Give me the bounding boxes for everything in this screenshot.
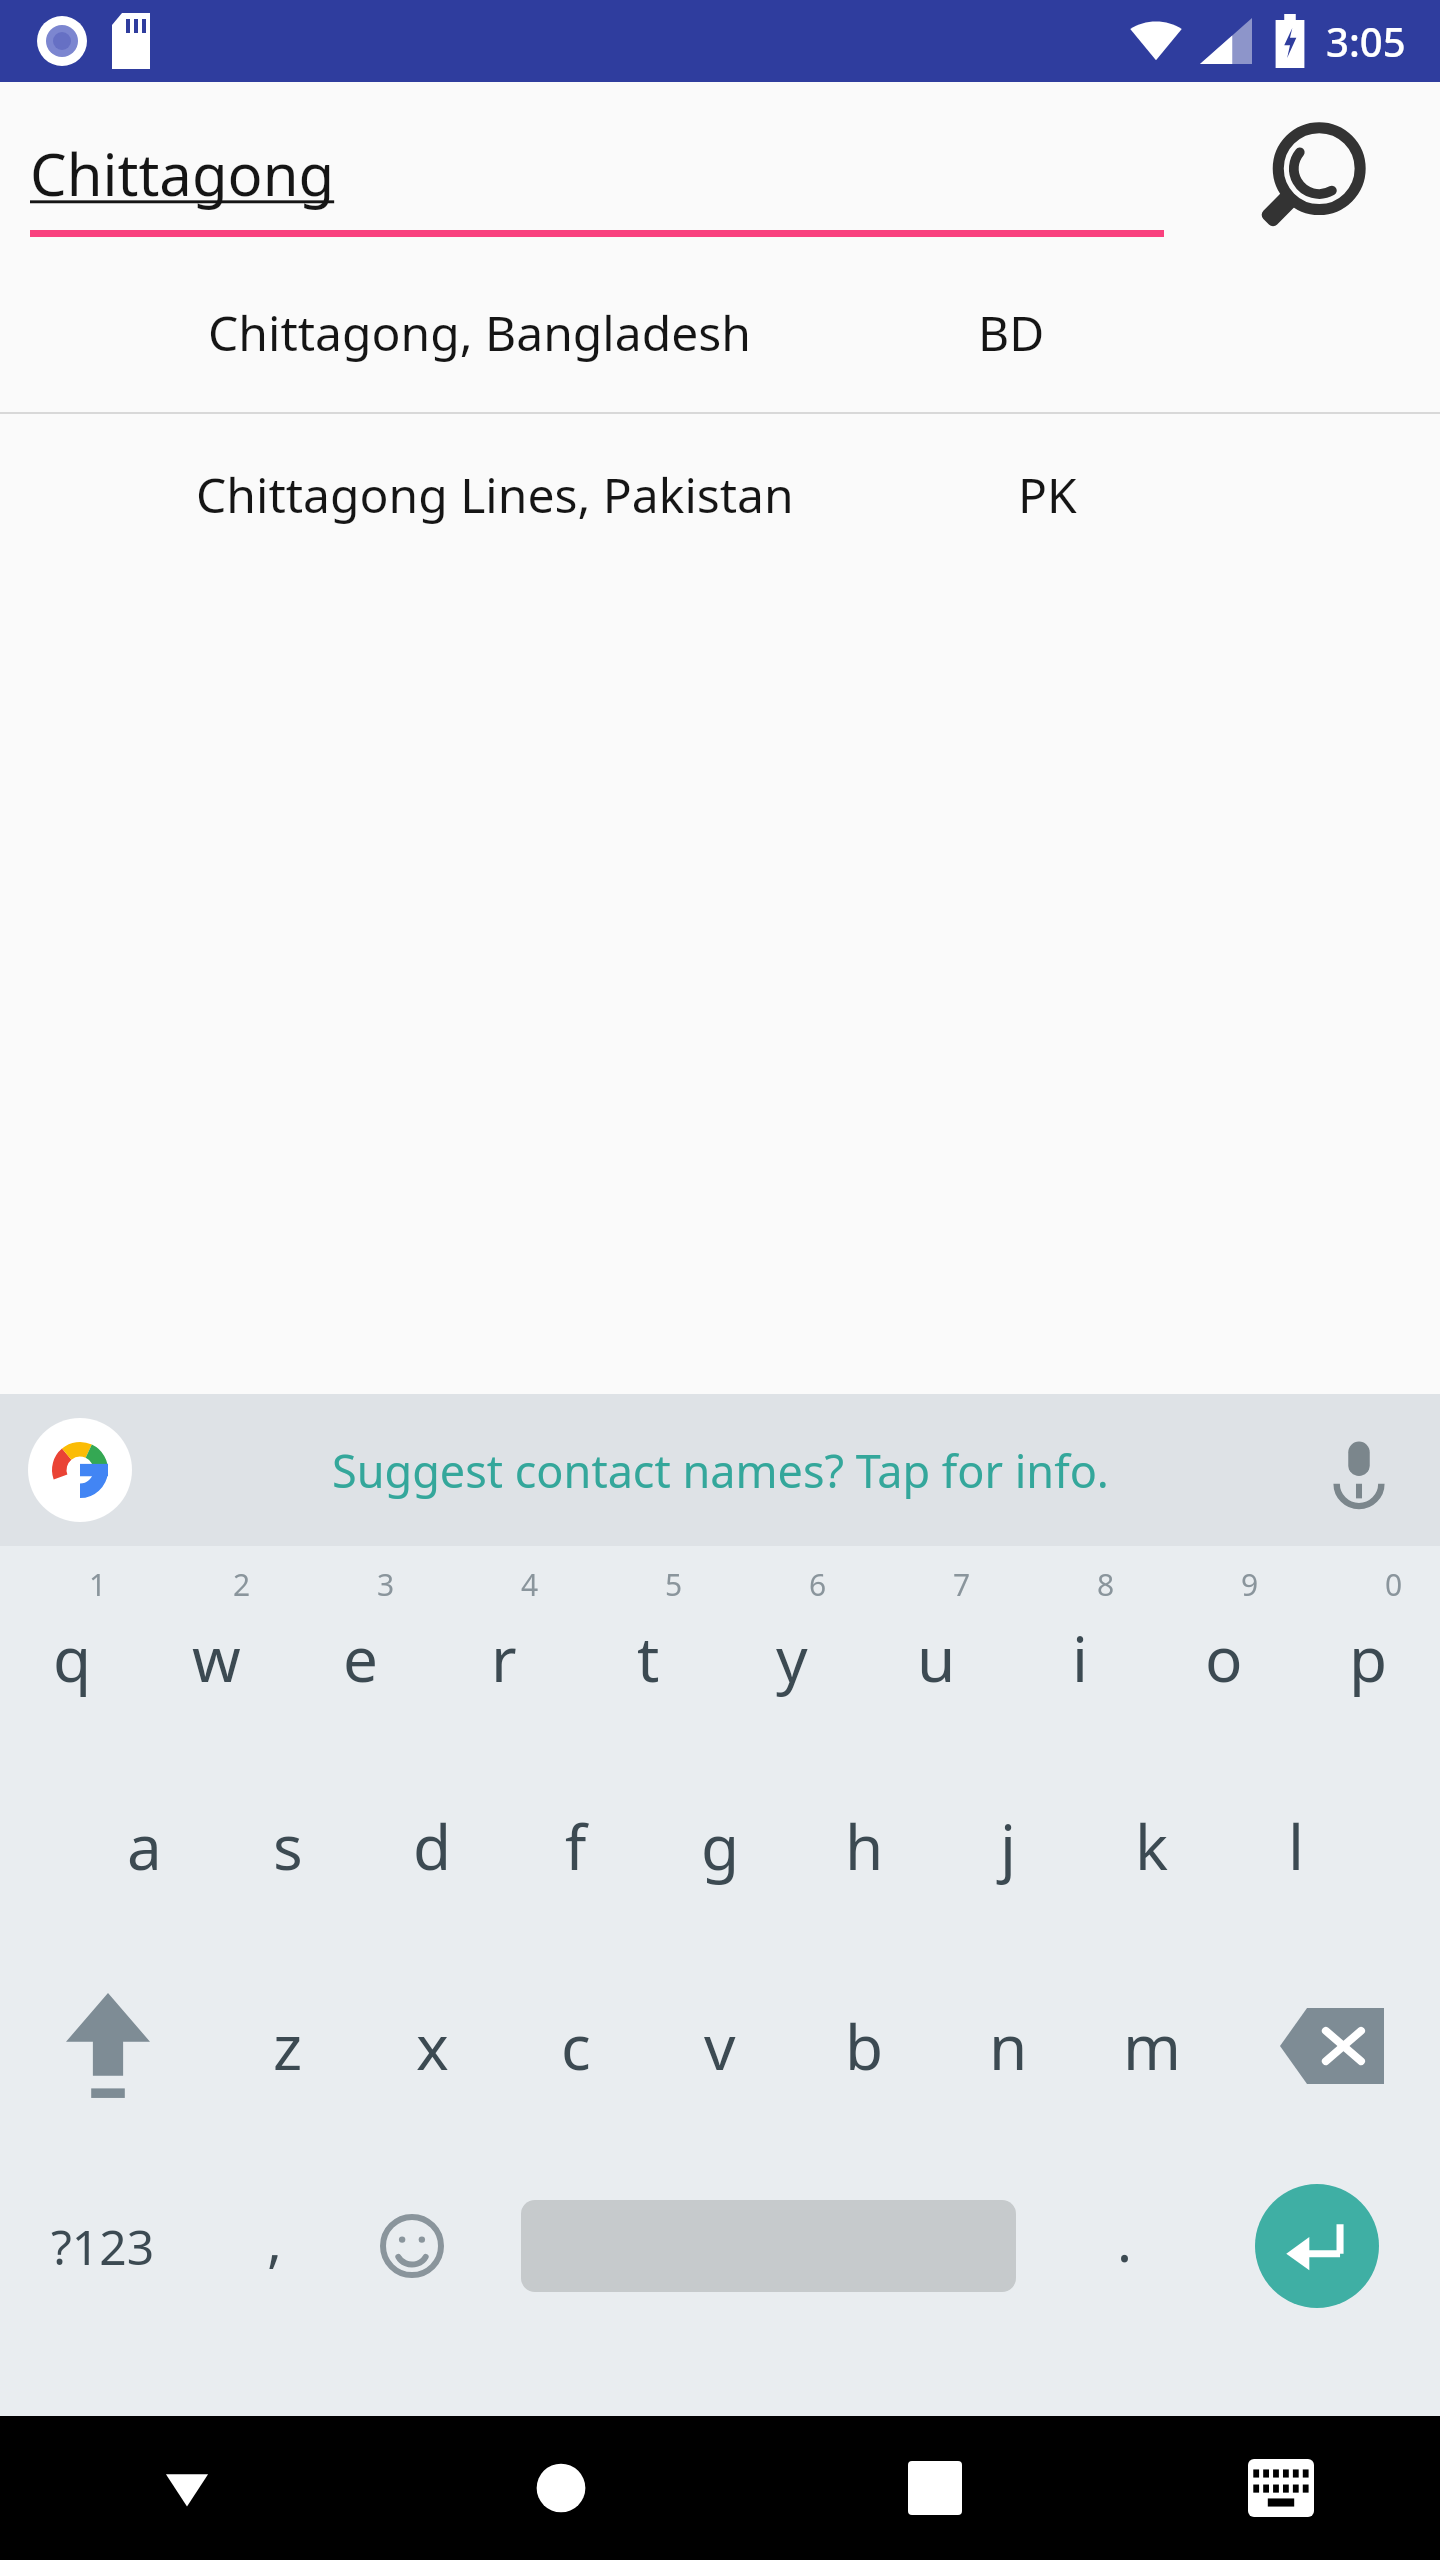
staticText: 1 [89, 1564, 107, 1605]
button[interactable]: Enter [1193, 2146, 1440, 2346]
staticText: , [267, 2202, 283, 2278]
button[interactable]: Chittagong, Bangladesh [0, 252, 1440, 412]
button[interactable]: s [216, 1746, 360, 1946]
button[interactable]: Switch keyboard [1122, 2416, 1440, 2560]
button[interactable]: h [792, 1746, 936, 1946]
staticText: o [1205, 1616, 1243, 1700]
button[interactable]: . [1056, 2146, 1193, 2346]
staticText: c [561, 2004, 591, 2088]
staticText: y [776, 1616, 808, 1700]
button[interactable]: Hide keyboard [0, 2416, 374, 2560]
button[interactable]: k [1080, 1746, 1224, 1946]
staticText: ?123 [51, 2214, 155, 2279]
staticText: u [917, 1616, 956, 1700]
staticText: 3 [377, 1564, 395, 1605]
staticText: v [704, 2004, 736, 2088]
button[interactable]: Space [480, 2146, 1056, 2346]
button[interactable]: v [648, 1946, 792, 2146]
button[interactable]: Backspace [1224, 1946, 1440, 2146]
button[interactable]: 1 [0, 1546, 144, 1746]
staticText: s [273, 1804, 303, 1888]
button[interactable]: Google [28, 1418, 132, 1522]
button[interactable]: , [206, 2146, 343, 2346]
staticText: p [1349, 1616, 1388, 1700]
staticText: 2 [233, 1564, 251, 1605]
button[interactable]: j [936, 1746, 1080, 1946]
button[interactable]: Chittagong Lines, Pakistan [0, 414, 1440, 574]
button[interactable]: 8 [1008, 1546, 1152, 1746]
button[interactable]: Voice input [1316, 1427, 1402, 1513]
staticText: Chittagong, Bangladesh [208, 300, 751, 365]
button[interactable]: 9 [1152, 1546, 1296, 1746]
staticText: 5 [665, 1564, 683, 1605]
button[interactable]: Shift [0, 1946, 216, 2146]
button[interactable]: g [648, 1746, 792, 1946]
staticText: PK [1018, 462, 1077, 527]
staticText: k [1135, 1804, 1169, 1888]
staticText: q [53, 1616, 92, 1700]
staticText: 6 [809, 1564, 827, 1605]
staticText: l [1288, 1804, 1304, 1888]
staticText: z [273, 2004, 303, 2088]
staticText: n [989, 2004, 1028, 2088]
button[interactable]: ?123 [0, 2146, 206, 2346]
staticText: e [343, 1616, 378, 1700]
staticText: m [1123, 2004, 1181, 2088]
staticText: g [701, 1804, 740, 1888]
button[interactable]: a [72, 1746, 216, 1946]
staticText: 7 [953, 1564, 971, 1605]
button[interactable]: f [504, 1746, 648, 1946]
staticText: Suggest contact names? Tap for info. [332, 1440, 1109, 1501]
staticText: d [413, 1804, 452, 1888]
button[interactable]: 0 [1296, 1546, 1440, 1746]
staticText: x [416, 2004, 449, 2088]
staticText: t [637, 1616, 660, 1700]
staticText: 3:05 [1326, 14, 1406, 68]
staticText: BD [978, 300, 1045, 365]
staticText: w [192, 1616, 241, 1700]
staticText: r [491, 1616, 517, 1700]
staticText: h [845, 1804, 884, 1888]
button[interactable]: d [360, 1746, 504, 1946]
button[interactable]: l [1224, 1746, 1368, 1946]
button[interactable]: b [792, 1946, 936, 2146]
staticText: f [565, 1804, 587, 1888]
button[interactable]: m [1080, 1946, 1224, 2146]
button[interactable]: 2 [144, 1546, 288, 1746]
button[interactable]: Suggest contact names? Tap for info. [332, 1440, 1109, 1501]
button[interactable]: 3 [288, 1546, 432, 1746]
button[interactable]: Recents [748, 2416, 1122, 2560]
staticText: b [845, 2004, 884, 2088]
staticText: Chittagong Lines, Pakistan [196, 462, 794, 527]
button[interactable]: c [504, 1946, 648, 2146]
button[interactable]: Search [1262, 114, 1392, 244]
staticText: 9 [1241, 1564, 1259, 1605]
staticText: j [1000, 1804, 1016, 1888]
button[interactable]: Chittagong [30, 134, 335, 213]
staticText: Chittagong [30, 134, 335, 213]
button[interactable]: 6 [720, 1546, 864, 1746]
button[interactable]: 7 [864, 1546, 1008, 1746]
button[interactable]: 5 [576, 1546, 720, 1746]
staticText: a [127, 1804, 162, 1888]
button[interactable]: Home [374, 2416, 748, 2560]
staticText: 0 [1385, 1564, 1403, 1605]
button[interactable]: x [360, 1946, 504, 2146]
staticText: 8 [1097, 1564, 1115, 1605]
staticText: i [1072, 1616, 1088, 1700]
button[interactable]: 4 [432, 1546, 576, 1746]
staticText: 4 [521, 1564, 539, 1605]
button[interactable]: n [936, 1946, 1080, 2146]
button[interactable]: Emoji [343, 2146, 480, 2346]
button[interactable]: z [216, 1946, 360, 2146]
staticText: . [1117, 2202, 1133, 2278]
